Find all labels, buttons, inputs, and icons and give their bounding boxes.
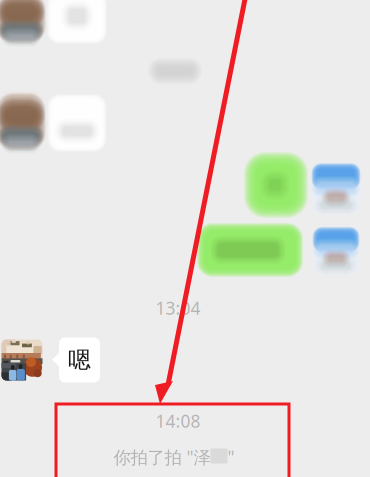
staticText: 14:08 bbox=[155, 409, 200, 432]
staticText: 你拍了拍 "泽 bbox=[113, 445, 210, 468]
staticText: " bbox=[227, 445, 234, 468]
staticText: 嗯 bbox=[68, 346, 91, 374]
staticText: 13:04 bbox=[155, 296, 200, 319]
